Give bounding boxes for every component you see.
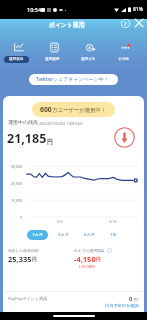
button[interactable]: Withdraw points xyxy=(114,127,135,148)
button[interactable]: 6カ月 xyxy=(79,230,100,240)
staticText: 10:54 xyxy=(27,6,42,13)
button[interactable]: その他 xyxy=(107,40,143,64)
staticText: 0 xyxy=(20,215,23,220)
staticText: 運用履歴 xyxy=(45,57,60,62)
staticText: (-16.38%) xyxy=(79,264,96,269)
staticText: 21,185 xyxy=(7,130,47,147)
button[interactable]: 運用履歴 xyxy=(36,40,72,64)
staticText: 1カ月 xyxy=(32,232,43,238)
staticText: 6カ月 xyxy=(84,232,95,238)
staticText: 円 xyxy=(47,138,53,146)
staticText: 2022年5月24日 10時54分 xyxy=(39,121,83,126)
staticText: 円 xyxy=(96,257,101,263)
button[interactable]: Help xyxy=(119,17,131,29)
staticText: 5/2 xyxy=(57,219,63,224)
staticText: 円 xyxy=(32,257,37,263)
staticText: 600 xyxy=(40,105,52,114)
button[interactable]: 付与予定日を確認 xyxy=(105,303,139,308)
staticText: 30,000 xyxy=(11,164,23,169)
staticText: 81% xyxy=(133,6,143,13)
button[interactable]: 3カ月 xyxy=(53,230,74,240)
staticText: 運用中の残高 xyxy=(8,119,39,125)
staticText: PayPayポイント残高 xyxy=(8,296,48,302)
staticText: 25,335 xyxy=(8,254,32,264)
staticText: 運用状況 xyxy=(9,57,24,62)
staticText: 1年 xyxy=(110,232,117,238)
staticText: 万ユーザーが運用中！ xyxy=(52,107,107,114)
staticText: 5/16 xyxy=(109,219,117,224)
staticText: 0 xyxy=(129,295,133,302)
staticText: 10,000 xyxy=(11,198,23,203)
button[interactable]: 1カ月 xyxy=(27,230,48,240)
staticText: 運用する xyxy=(81,57,96,62)
staticText: 円 xyxy=(133,297,139,302)
staticText: 20,000 xyxy=(11,181,23,186)
staticText: -4,150 xyxy=(74,254,96,264)
staticText: ポイント運用 xyxy=(49,21,85,28)
staticText: ? xyxy=(124,20,127,27)
staticText: 3カ月 xyxy=(58,232,69,238)
staticText: その他 xyxy=(118,57,129,62)
staticText: Twitterシェアキャンペーン中！ xyxy=(36,76,111,83)
button[interactable]: Close xyxy=(133,17,145,29)
button[interactable]: 運用状況 xyxy=(0,40,36,64)
staticText: 追加した残高総額 xyxy=(8,248,39,253)
button[interactable]: 1年 xyxy=(105,230,122,240)
staticText: 今までの運用損益 xyxy=(74,248,105,253)
button[interactable]: 運用する xyxy=(72,40,108,64)
button[interactable]: Twitterシェアキャンペーン中！ xyxy=(29,74,118,85)
